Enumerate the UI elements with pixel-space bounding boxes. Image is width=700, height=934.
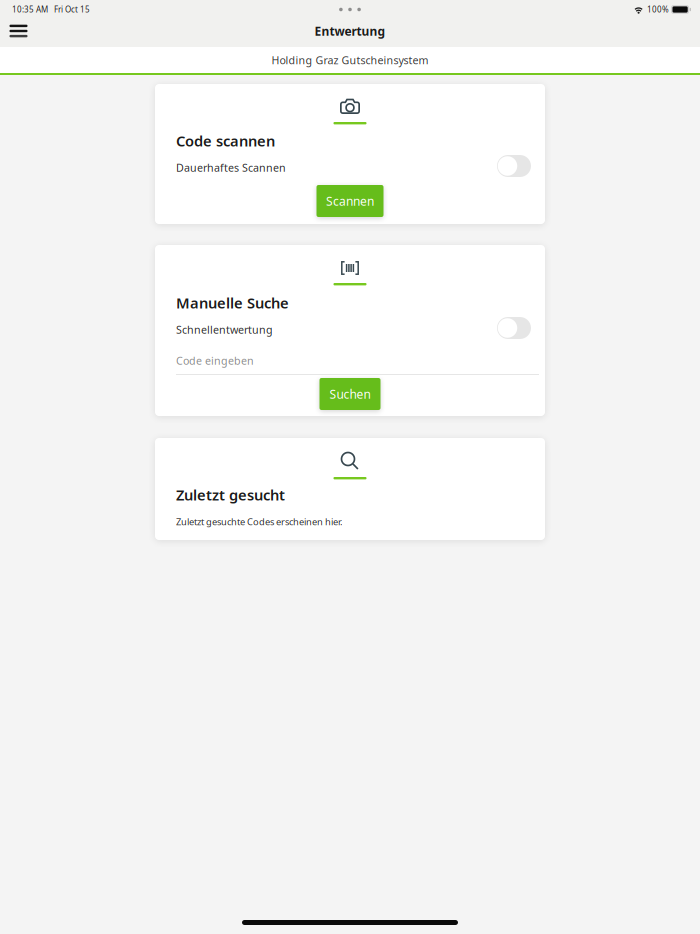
staticText: Entwertung xyxy=(314,23,385,39)
button[interactable]: Schnellentwertung xyxy=(497,317,531,339)
staticText: Schnellentwertung xyxy=(176,322,273,337)
staticText: Zuletzt gesucht xyxy=(176,485,285,504)
staticText: Manuelle Suche xyxy=(176,293,289,312)
staticText: 100% xyxy=(647,4,669,15)
button[interactable]: Menu xyxy=(0,19,37,43)
staticText: 10:35 AM Fri Oct 15 xyxy=(12,4,90,15)
staticText: Code eingeben xyxy=(176,354,254,368)
staticText: Zuletzt gesuchte Codes erscheinen hier. xyxy=(176,515,343,528)
staticText: Holding Graz Gutscheinsystem xyxy=(271,53,428,67)
staticText: Code scannen xyxy=(176,131,275,150)
button[interactable]: Dauerhaftes Scannen xyxy=(497,155,531,177)
button[interactable]: Suchen xyxy=(319,378,380,410)
staticText: Dauerhaftes Scannen xyxy=(176,160,286,175)
staticText: Scannen xyxy=(326,193,374,209)
button[interactable]: Scannen xyxy=(316,185,383,217)
staticText: Suchen xyxy=(329,386,370,402)
